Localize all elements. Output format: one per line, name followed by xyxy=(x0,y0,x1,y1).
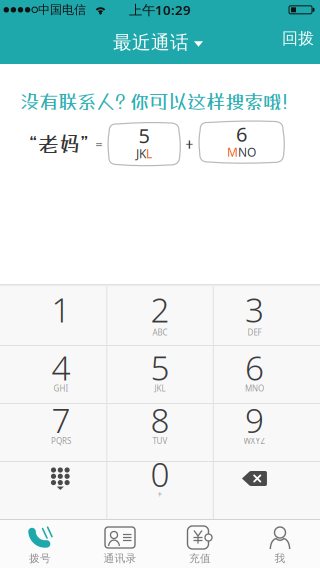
staticText: DEF xyxy=(247,327,261,338)
button[interactable]: 6 xyxy=(213,345,320,403)
staticText: 4 xyxy=(51,345,70,390)
button[interactable]: 回拨 xyxy=(282,29,314,48)
button[interactable]: 0 xyxy=(107,461,213,519)
staticText: 我 xyxy=(274,552,285,565)
staticText: + xyxy=(158,489,163,500)
button[interactable]: 我 xyxy=(240,519,320,568)
staticText: 1 xyxy=(51,287,70,332)
staticText: 7 xyxy=(51,398,70,442)
staticText: PQRS xyxy=(51,436,71,446)
staticText: 拨号 xyxy=(29,552,51,565)
staticText: 充值 xyxy=(189,552,211,565)
staticText: 上午10:29 xyxy=(129,1,191,19)
button[interactable]: 9 xyxy=(213,403,320,461)
button[interactable]: 4 xyxy=(0,345,107,403)
staticText: 5 xyxy=(150,345,169,390)
button[interactable]: 删除 xyxy=(213,461,320,519)
staticText: 中国电信 xyxy=(38,2,86,17)
button[interactable]: 充值 xyxy=(160,519,240,568)
staticText: 8 xyxy=(150,398,169,442)
button[interactable]: 2 xyxy=(107,284,213,345)
button[interactable]: 8 xyxy=(107,403,213,461)
staticText: MNO xyxy=(245,383,264,394)
button[interactable]: 1 xyxy=(0,284,107,345)
staticText: = xyxy=(95,135,103,153)
staticText: J xyxy=(136,145,139,161)
staticText: + xyxy=(185,134,194,154)
staticText: L xyxy=(146,145,152,161)
staticText: 3 xyxy=(245,287,264,332)
staticText: 5 xyxy=(138,122,149,149)
staticText: 通讯录 xyxy=(103,552,136,565)
button[interactable]: 拨号 xyxy=(0,519,80,568)
staticText: 最近通话 xyxy=(113,31,189,54)
staticText: JKL xyxy=(154,383,165,394)
staticText: 9 xyxy=(245,398,264,442)
staticText: “老妈” xyxy=(28,132,90,156)
staticText: M xyxy=(227,144,238,160)
staticText: TUV xyxy=(152,436,167,446)
staticText: WXYZ xyxy=(243,436,265,446)
button[interactable]: 隐藏键盘 xyxy=(0,461,107,519)
staticText: GHI xyxy=(53,383,68,394)
staticText: 6 xyxy=(245,345,264,390)
staticText: O xyxy=(247,144,256,160)
button[interactable]: 7 xyxy=(0,403,107,461)
button[interactable]: 通讯录 xyxy=(80,519,160,568)
staticText: 0 xyxy=(151,452,170,496)
staticText: 6 xyxy=(236,121,247,147)
button[interactable]: 5 xyxy=(107,345,213,403)
staticText: 没有联系人? 你可以这样搜索哦! xyxy=(20,90,288,113)
staticText: N xyxy=(238,144,247,160)
staticText: 2 xyxy=(150,287,169,332)
button[interactable]: 最近通话 xyxy=(113,31,203,54)
staticText: K xyxy=(139,145,146,161)
button[interactable]: 3 xyxy=(213,284,320,345)
staticText: 回拨 xyxy=(282,29,314,48)
staticText: ABC xyxy=(152,327,167,338)
